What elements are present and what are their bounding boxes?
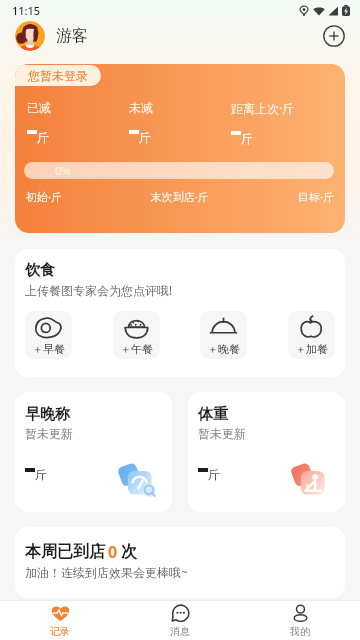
staticText: 暂未更新: [198, 426, 246, 441]
button[interactable]: 体重: [188, 392, 345, 512]
button[interactable]: Add: [323, 25, 345, 47]
staticText: 目标·斤: [231, 189, 334, 204]
staticText: 我的: [290, 625, 310, 638]
button[interactable]: 您暂未登录: [15, 64, 345, 233]
button[interactable]: 我的: [240, 601, 360, 640]
staticText: 消息: [170, 625, 190, 638]
staticText: 游客: [56, 26, 88, 46]
button[interactable]: ＋加餐: [288, 311, 335, 359]
staticText: 未减: [129, 100, 153, 115]
staticText: 末次到店·斤: [128, 189, 231, 204]
staticText: 本周已到店: [25, 542, 105, 562]
staticText: 记录: [50, 625, 70, 638]
staticText: 暂未更新: [25, 426, 73, 441]
button[interactable]: ＋早餐: [25, 311, 72, 359]
staticText: 次: [121, 542, 137, 562]
button[interactable]: ＋午餐: [113, 311, 160, 359]
staticText: 加油！连续到店效果会更棒哦~: [25, 564, 188, 580]
staticText: 0%: [55, 163, 71, 178]
staticText: 斤: [241, 131, 253, 146]
staticText: 体重: [198, 405, 228, 424]
staticText: 早晚称: [25, 405, 70, 424]
staticText: 斤: [37, 130, 49, 145]
staticText: 饮食: [25, 261, 55, 280]
staticText: 距离上次·斤: [231, 100, 295, 116]
staticText: 11:15: [12, 3, 41, 18]
staticText: 斤: [139, 130, 151, 145]
staticText: 斤: [35, 467, 47, 482]
staticText: ＋午餐: [120, 342, 153, 356]
staticText: 已减: [27, 100, 51, 115]
staticText: ＋晚餐: [207, 342, 240, 356]
staticText: ＋加餐: [295, 342, 328, 356]
staticText: 斤: [208, 467, 220, 482]
staticText: ＋早餐: [32, 342, 65, 356]
button[interactable]: 本周已到店: [15, 527, 345, 598]
staticText: 初始·斤: [26, 189, 128, 204]
button[interactable]: 消息: [120, 601, 240, 640]
button[interactable]: [15, 21, 45, 51]
button[interactable]: ＋晚餐: [200, 311, 247, 359]
staticText: 0: [108, 541, 118, 563]
staticText: 上传餐图专家会为您点评哦!: [25, 282, 173, 298]
button[interactable]: 记录: [0, 601, 120, 640]
staticText: 您暂未登录: [28, 68, 88, 83]
button[interactable]: 早晚称: [15, 392, 172, 512]
